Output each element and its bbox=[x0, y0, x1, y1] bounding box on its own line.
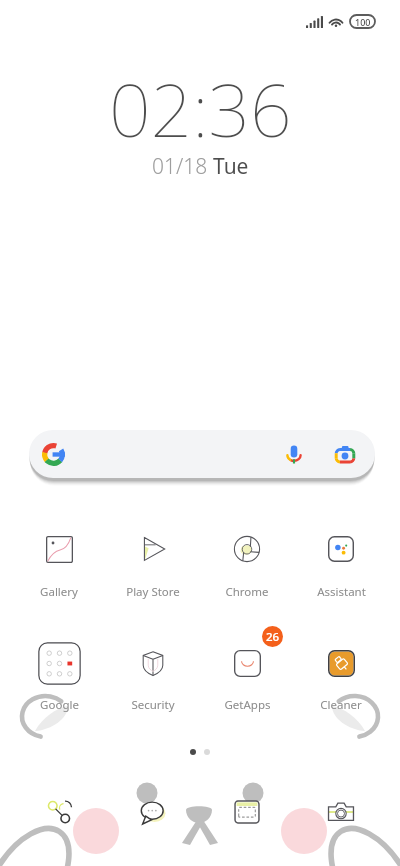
staticText: Assistant bbox=[317, 584, 366, 600]
button[interactable]: Play Store bbox=[117, 523, 189, 600]
staticText: Chrome bbox=[225, 584, 269, 600]
button[interactable]: Google Lens bbox=[334, 443, 356, 465]
button[interactable]: Voice search bbox=[284, 444, 304, 464]
staticText: Tue bbox=[213, 152, 249, 181]
button[interactable]: Security bbox=[117, 637, 189, 713]
button[interactable]: Assistant bbox=[305, 523, 377, 600]
button[interactable]: Phone bbox=[37, 790, 81, 834]
staticText: Cleaner bbox=[320, 697, 362, 713]
staticText: 26 bbox=[266, 629, 280, 645]
button[interactable]: Notes bbox=[225, 790, 269, 834]
other: Google Search bbox=[42, 443, 65, 466]
staticText: 01/18 bbox=[152, 152, 213, 181]
button[interactable]: Messages bbox=[131, 790, 175, 834]
staticText: GetApps bbox=[224, 697, 271, 713]
button[interactable]: Google Search bbox=[29, 430, 375, 478]
button[interactable]: Gallery bbox=[23, 523, 95, 600]
staticText: Google bbox=[40, 697, 79, 713]
staticText: Gallery bbox=[40, 584, 78, 600]
staticText: Security bbox=[131, 697, 175, 713]
button[interactable]: Google bbox=[23, 637, 95, 713]
staticText: Play Store bbox=[126, 584, 180, 600]
button[interactable]: Cleaner bbox=[305, 637, 377, 713]
button[interactable]: GetApps bbox=[211, 637, 283, 713]
staticText: 100 bbox=[355, 16, 371, 28]
button[interactable]: Chrome bbox=[211, 523, 283, 600]
button[interactable]: Camera bbox=[319, 790, 363, 834]
staticText: 02:36 bbox=[109, 59, 292, 158]
